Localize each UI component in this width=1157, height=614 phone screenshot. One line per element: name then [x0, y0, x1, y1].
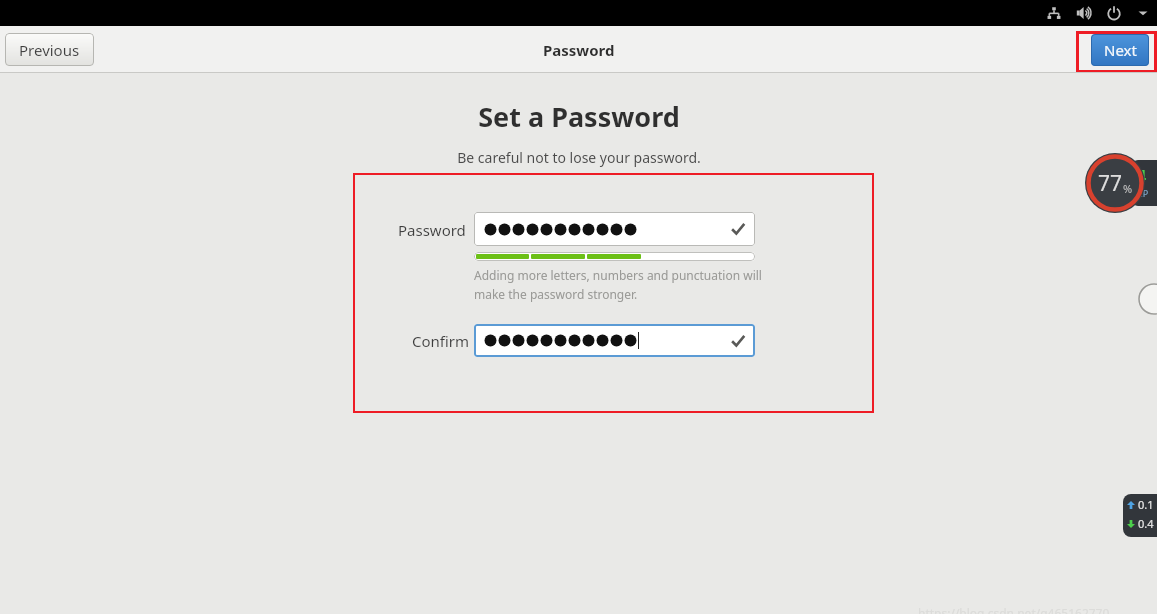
staticText: CP — [1137, 187, 1149, 199]
staticText: Password — [398, 220, 466, 240]
staticText: Password — [543, 40, 615, 60]
staticText: 0.1 — [1138, 497, 1154, 512]
button[interactable] — [474, 212, 755, 246]
button[interactable]: Next — [1091, 34, 1149, 66]
button[interactable]: More — [1135, 5, 1151, 21]
staticText: Confirm — [412, 331, 470, 351]
button[interactable]: Previous — [5, 33, 94, 66]
staticText: 4 — [1137, 165, 1147, 187]
button[interactable]: Power — [1105, 4, 1123, 22]
button[interactable]: Volume — [1075, 4, 1093, 22]
staticText: make the password stronger. — [474, 286, 638, 302]
button[interactable]: Network — [1045, 4, 1063, 22]
staticText: Next — [1104, 40, 1137, 60]
staticText: Set a Password — [478, 98, 680, 135]
staticText: Be careful not to lose your password. — [457, 148, 701, 167]
staticText: 77 — [1098, 169, 1123, 198]
staticText: % — [1123, 181, 1133, 196]
button[interactable] — [474, 324, 755, 357]
staticText: 0.4 — [1138, 516, 1154, 531]
staticText: https://blog.csdn.net/q465162770 — [918, 605, 1110, 614]
staticText: Adding more letters, numbers and punctua… — [474, 267, 762, 283]
staticText: Previous — [19, 40, 80, 60]
